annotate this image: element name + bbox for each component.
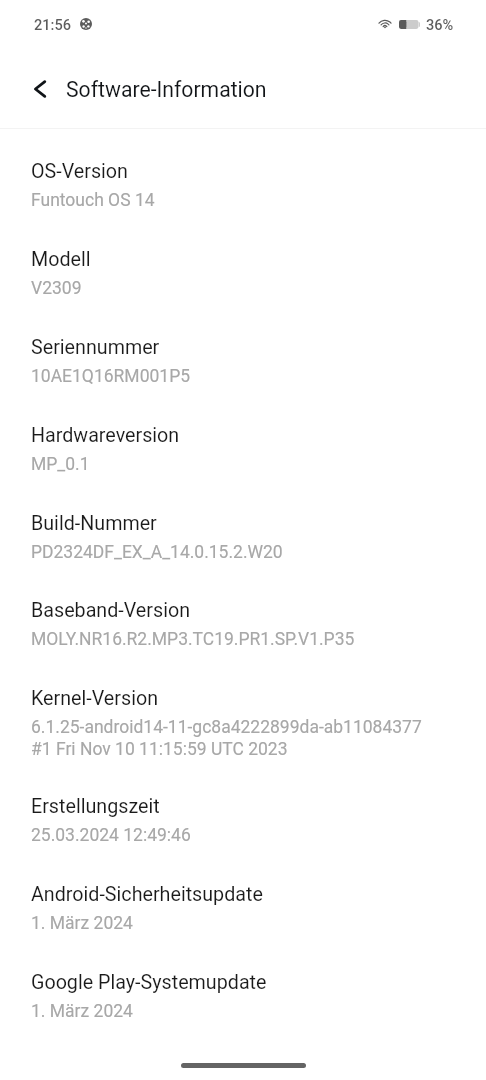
staticText: Erstellungszeit [31,795,160,818]
button[interactable]: Modell [0,230,486,318]
button[interactable]: Android-Sicherheitsupdate [0,865,486,953]
staticText: 1. März 2024 [31,1001,133,1022]
staticText: PD2324DF_EX_A_14.0.15.2.W20 [31,542,283,563]
staticText: 25.03.2024 12:49:46 [31,825,191,846]
staticText: Google Play-Systemupdate [31,971,267,994]
staticText: Android-Sicherheitsupdate [31,883,263,906]
staticText: 21:56 [34,16,72,33]
button[interactable]: Back [14,64,66,116]
staticText: OS-Version [31,160,128,183]
button[interactable]: Google Play-Systemupdate [0,953,486,1040]
button[interactable]: Erstellungszeit [0,777,486,865]
button[interactable]: Build-Nummer [0,494,486,582]
staticText: Baseband-Version [31,599,191,622]
button[interactable]: OS-Version [0,142,486,230]
staticText: MP_0.1 [31,454,90,475]
staticText: Hardwareversion [31,424,180,447]
button[interactable]: Seriennummer [0,318,486,406]
staticText: Software-Information [66,77,267,102]
staticText: 10AE1Q16RM001P5 [31,366,191,387]
staticText: MOLY.NR16.R2.MP3.TC19.PR1.SP.V1.P35 [31,629,355,650]
staticText: Seriennummer [31,336,160,359]
staticText: V2309 [31,278,82,299]
button[interactable]: Kernel-Version [0,669,486,777]
staticText: 6.1.25-android14-11-gc8a4222899da-ab1108… [31,717,422,738]
button[interactable]: Baseband-Version [0,581,486,669]
staticText: Kernel-Version [31,687,159,710]
staticText: Funtouch OS 14 [31,190,155,211]
staticText: #1 Fri Nov 10 11:15:59 UTC 2023 [31,739,288,760]
staticText: 36% [426,16,454,33]
staticText: Build-Nummer [31,512,157,535]
staticText: Modell [31,248,91,271]
button[interactable]: Hardwareversion [0,406,486,494]
staticText: 1. März 2024 [31,913,133,934]
